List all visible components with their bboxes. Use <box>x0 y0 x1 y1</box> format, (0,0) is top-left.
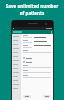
button[interactable] <box>23 50 51 55</box>
button[interactable] <box>23 40 51 45</box>
button[interactable] <box>23 75 51 80</box>
button[interactable] <box>23 45 51 50</box>
button[interactable]: More options <box>50 31 53 34</box>
button[interactable] <box>32 43 52 47</box>
button[interactable] <box>12 42 21 46</box>
button[interactable] <box>23 95 31 98</box>
staticText: of patients <box>3 10 61 16</box>
button[interactable] <box>12 58 21 62</box>
button[interactable] <box>43 95 51 98</box>
button[interactable] <box>12 86 21 90</box>
button[interactable] <box>12 74 21 78</box>
button[interactable] <box>12 54 21 58</box>
button[interactable] <box>32 39 52 43</box>
button[interactable] <box>23 70 51 75</box>
button[interactable] <box>23 35 51 40</box>
button[interactable] <box>12 66 21 70</box>
button[interactable] <box>12 62 21 66</box>
button[interactable] <box>32 35 52 39</box>
button[interactable] <box>12 50 21 54</box>
button[interactable] <box>12 70 21 74</box>
button[interactable] <box>12 38 21 42</box>
button[interactable] <box>23 61 51 63</box>
staticText: Save unlimited number <box>3 3 61 9</box>
button[interactable] <box>12 78 21 82</box>
button[interactable] <box>12 34 21 38</box>
button[interactable] <box>23 65 51 70</box>
button[interactable] <box>12 46 21 50</box>
button[interactable] <box>23 57 51 59</box>
button[interactable] <box>12 82 21 86</box>
